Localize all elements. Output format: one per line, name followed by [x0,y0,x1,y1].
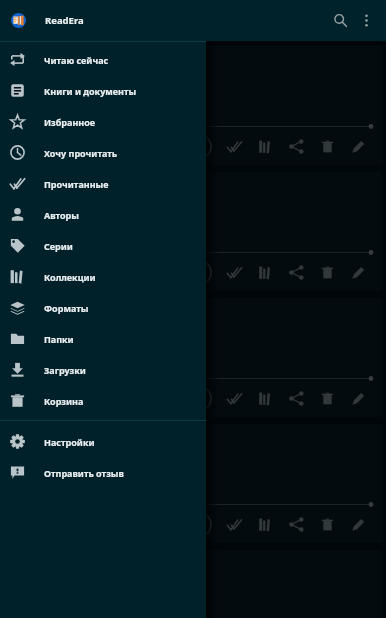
button[interactable]: edit [343,256,374,289]
button[interactable]: Читаю сейчас [0,44,206,75]
staticText: Папки [44,333,74,345]
staticText: Коллекции [44,271,96,283]
button[interactable]: trash [312,130,343,163]
button[interactable]: doublecheck [0,424,383,543]
button[interactable]: doublecheck [219,508,250,541]
button[interactable]: collections [250,130,281,163]
staticText: Прочитанные [44,178,109,190]
button[interactable]: Настройки [0,426,206,457]
button[interactable]: share [281,508,312,541]
button[interactable]: Search [326,0,354,41]
button[interactable]: Форматы [0,292,206,323]
button[interactable]: Папки [0,323,206,354]
staticText: Читаю сейчас [44,54,109,66]
button[interactable]: Отправить отзыв [0,457,206,488]
button[interactable]: Коллекции [0,261,206,292]
button[interactable] [0,550,383,618]
button[interactable]: trash [312,256,343,289]
button[interactable]: trash [312,382,343,415]
button[interactable]: collections [250,256,281,289]
button[interactable]: collections [250,382,281,415]
button[interactable]: Прочитанные [0,168,206,199]
button[interactable]: Корзина [0,385,206,416]
button[interactable]: edit [343,508,374,541]
button[interactable]: share [281,256,312,289]
button[interactable]: Избранное [0,106,206,137]
staticText: Загрузки [44,364,86,376]
button[interactable]: More options [356,0,376,41]
button[interactable]: Загрузки [0,354,206,385]
button[interactable]: trash [312,508,343,541]
button[interactable]: Хочу прочитать [0,137,206,168]
staticText: Серии [44,240,73,252]
staticText: Книги и документы [44,85,137,97]
staticText: Хочу прочитать [44,147,118,159]
button[interactable]: share [281,130,312,163]
button[interactable]: Серии [0,230,206,261]
staticText: Настройки [44,436,95,448]
staticText: Отправить отзыв [44,467,124,479]
staticText: Избранное [44,116,96,128]
staticText: Авторы [44,209,79,221]
button[interactable]: doublecheck [219,256,250,289]
button[interactable]: edit [343,382,374,415]
staticText: Корзина [44,395,84,407]
button[interactable]: doublecheck [219,130,250,163]
button[interactable]: Авторы [0,199,206,230]
button[interactable]: doublecheck [0,298,383,417]
button[interactable]: doublecheck [219,382,250,415]
staticText: ReadEra [45,14,84,27]
button[interactable]: edit [343,130,374,163]
button[interactable]: doublecheck [0,46,383,165]
button[interactable]: doublecheck [0,172,383,291]
button[interactable]: collections [250,508,281,541]
button[interactable]: Книги и документы [0,75,206,106]
button[interactable]: share [281,382,312,415]
staticText: Форматы [44,302,89,314]
